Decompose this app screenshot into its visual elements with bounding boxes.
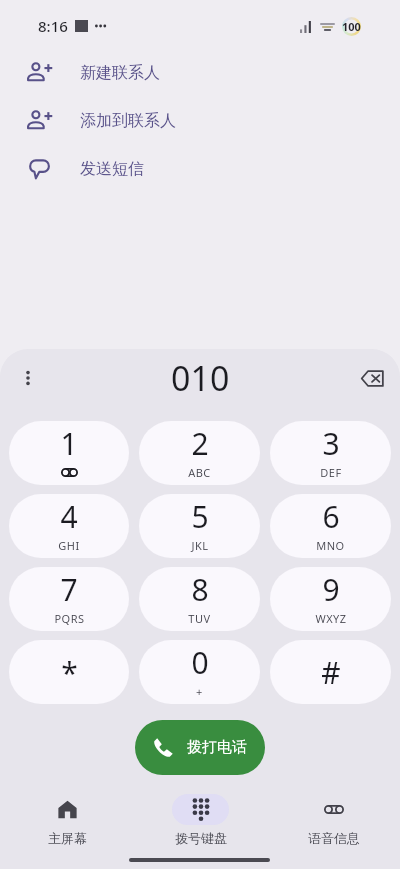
staticText: 4 [60, 496, 78, 537]
button[interactable]: 7 [9, 567, 129, 631]
button[interactable]: 4 [9, 494, 129, 558]
staticText: 添加到联系人 [80, 111, 176, 131]
staticText: 7 [60, 569, 78, 610]
staticText: 2 [191, 423, 209, 464]
staticText: DEF [320, 465, 342, 480]
button[interactable]: 拨号键盘 [134, 790, 267, 846]
staticText: 100 [342, 19, 361, 34]
button[interactable]: 拨打电话 [135, 720, 265, 775]
staticText: 拨号键盘 [175, 830, 227, 846]
staticText: * [61, 652, 78, 693]
staticText: # [321, 652, 341, 693]
button[interactable]: 6 [270, 494, 391, 558]
staticText: 3 [322, 423, 340, 464]
button[interactable]: 1 [9, 421, 129, 485]
staticText: 010 [171, 355, 230, 401]
staticText: 9 [322, 569, 340, 610]
staticText: JKL [191, 538, 209, 553]
button[interactable]: 新建联系人 [0, 49, 400, 97]
staticText: 0 [191, 642, 209, 683]
staticText: 主屏幕 [48, 830, 87, 846]
button[interactable]: Backspace [350, 356, 394, 400]
staticText: WXYZ [315, 611, 347, 626]
button[interactable]: * [9, 640, 129, 704]
button[interactable]: 语音信息 [267, 790, 400, 846]
button[interactable]: 3 [270, 421, 391, 485]
staticText: 新建联系人 [80, 63, 160, 83]
staticText: 拨打电话 [187, 738, 247, 757]
staticText: + [196, 684, 203, 699]
button[interactable]: More options [8, 358, 48, 398]
staticText: ABC [188, 465, 211, 480]
staticText: PQRS [54, 611, 85, 626]
staticText: 6 [322, 496, 340, 537]
button[interactable]: 2 [139, 421, 260, 485]
button[interactable]: 8 [139, 567, 260, 631]
button[interactable]: 5 [139, 494, 260, 558]
staticText: TUV [188, 611, 211, 626]
staticText: 8 [191, 569, 209, 610]
button[interactable]: 0 [139, 640, 260, 704]
button[interactable]: 9 [270, 567, 391, 631]
button[interactable]: 主屏幕 [0, 790, 134, 846]
staticText: GHI [58, 538, 80, 553]
button[interactable]: 添加到联系人 [0, 97, 400, 145]
staticText: 语音信息 [308, 830, 360, 846]
staticText: 发送短信 [80, 159, 144, 179]
staticText: 8:16 [38, 16, 68, 36]
staticText: 1 [60, 423, 78, 464]
staticText: MNO [316, 538, 345, 553]
button[interactable]: 发送短信 [0, 145, 400, 193]
staticText: 5 [191, 496, 209, 537]
button[interactable]: # [270, 640, 391, 704]
